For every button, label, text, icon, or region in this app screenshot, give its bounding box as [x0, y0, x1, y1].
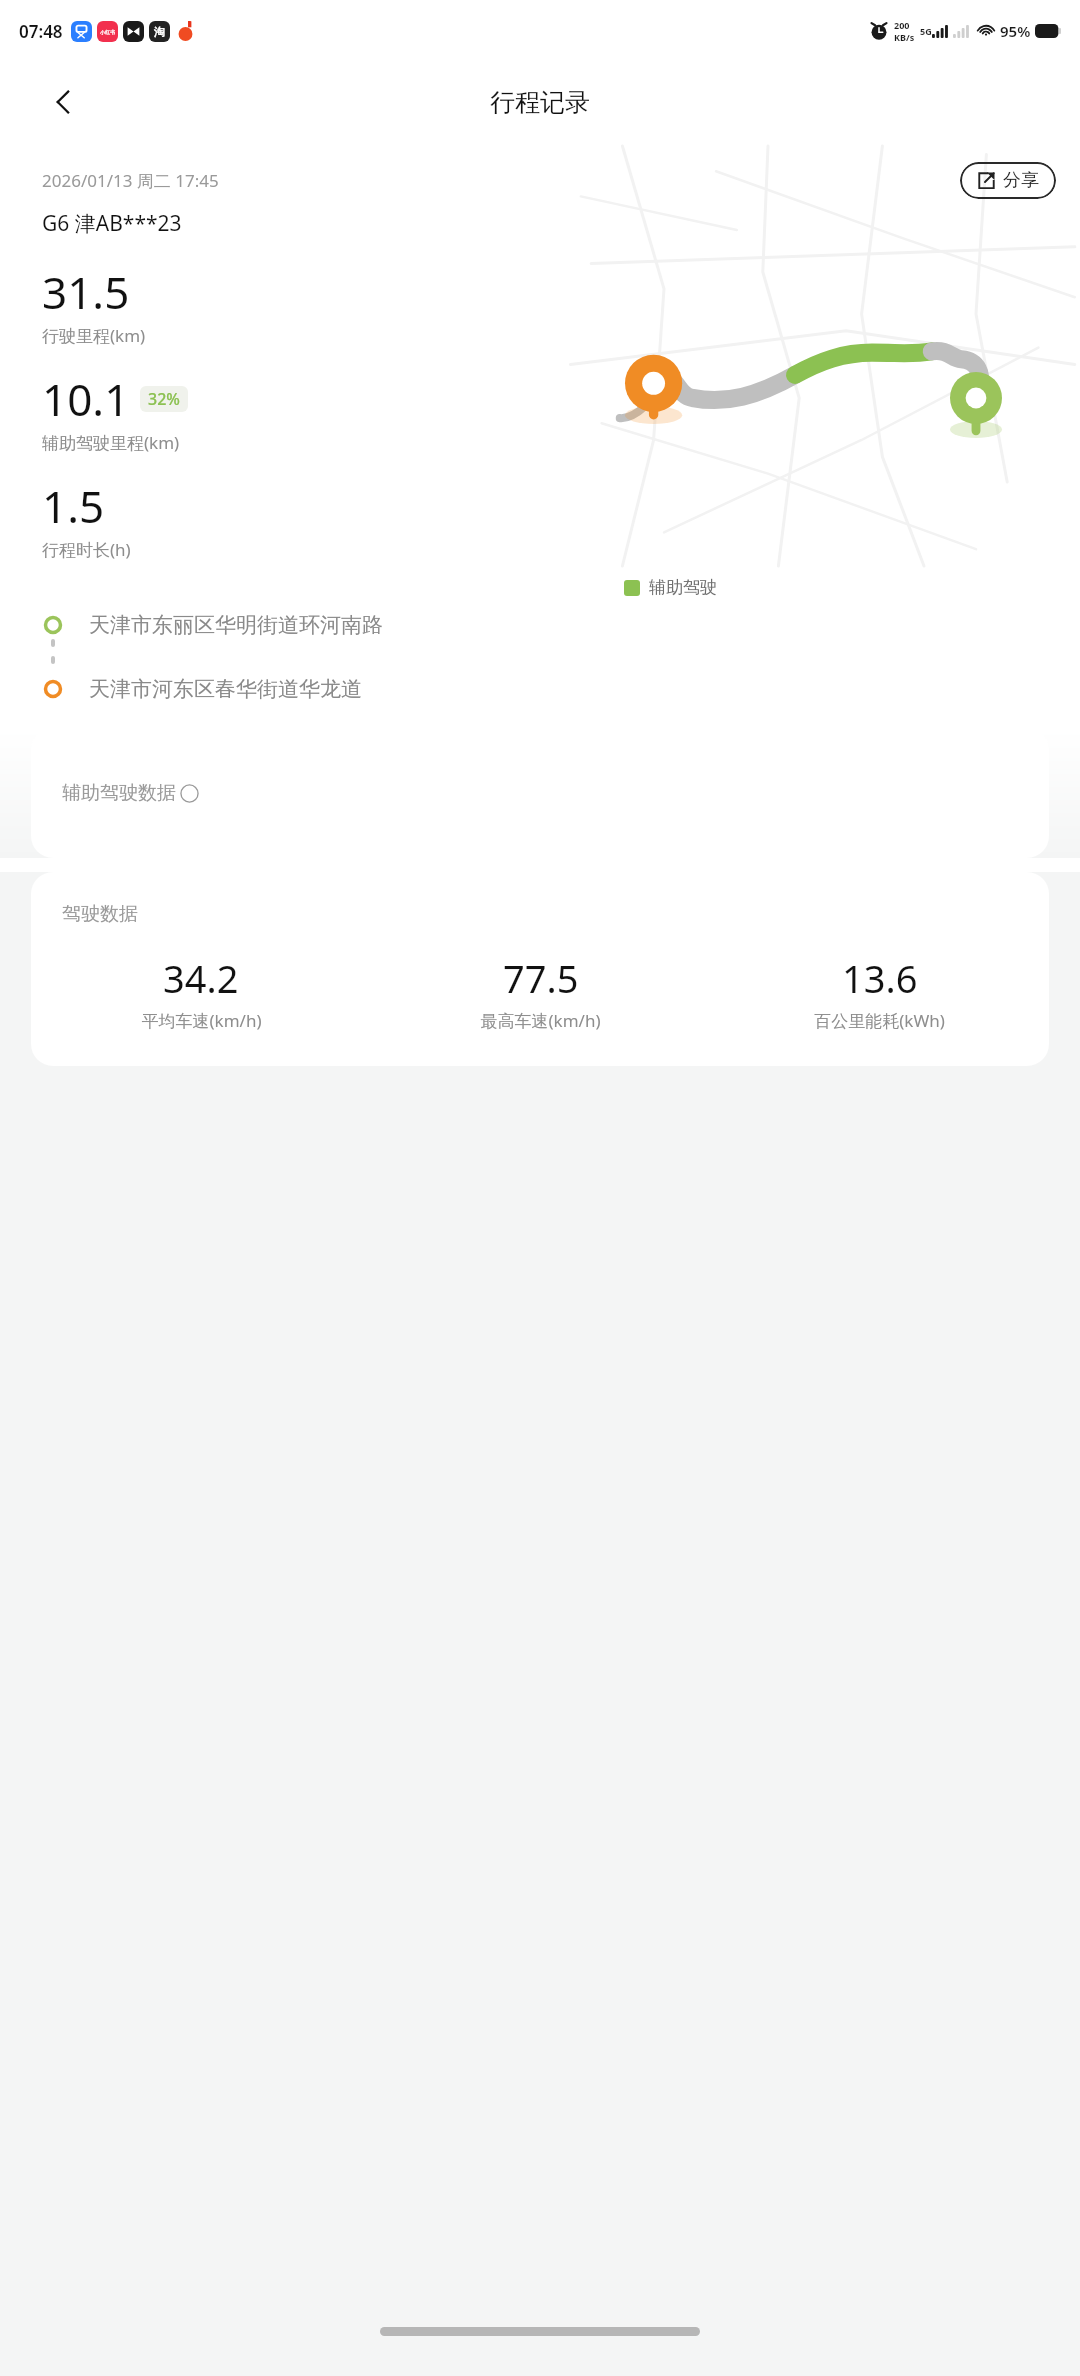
staticText: 淘	[154, 25, 165, 39]
staticText: 07:48	[19, 20, 63, 43]
staticText: 小红书	[100, 29, 115, 35]
staticText: G6 津AB***23	[42, 209, 182, 238]
staticText: 13.6	[842, 952, 918, 1004]
staticText: KB/s	[894, 31, 915, 43]
staticText: 77.5	[503, 952, 579, 1004]
staticText: 31.5	[42, 262, 130, 322]
button[interactable]: Back	[42, 80, 86, 124]
staticText: 10.1	[42, 369, 130, 429]
staticText: 32%	[148, 388, 180, 410]
staticText: 辅助驾驶数据	[62, 781, 176, 805]
staticText: 5G	[920, 25, 932, 37]
button[interactable]: 驾驶数据	[31, 872, 1049, 1066]
staticText: 天津市东丽区华明街道环河南路	[89, 612, 383, 638]
staticText: 最高车速(km/h)	[480, 1009, 601, 1032]
staticText: 行驶里程(km)	[42, 324, 146, 347]
button[interactable]: 分享	[960, 162, 1056, 199]
button[interactable]: 辅助驾驶数据	[31, 728, 1049, 858]
staticText: 1.5	[42, 476, 105, 536]
staticText: 行程记录	[490, 87, 590, 118]
staticText: 百公里能耗(kWh)	[814, 1009, 945, 1032]
staticText: 95%	[1000, 21, 1031, 41]
staticText: 分享	[1003, 169, 1039, 192]
staticText: 辅助驾驶里程(km)	[42, 431, 180, 454]
staticText: 天津市河东区春华街道华龙道	[89, 676, 362, 702]
staticText: 驾驶数据	[62, 902, 138, 926]
staticText: 辅助驾驶	[649, 577, 717, 598]
staticText: 34.2	[163, 952, 239, 1004]
staticText: 行程时长(h)	[42, 538, 131, 561]
staticText: 200	[894, 19, 910, 31]
staticText: 平均车速(km/h)	[141, 1009, 262, 1032]
staticText: 2026/01/13 周二 17:45	[42, 169, 219, 192]
